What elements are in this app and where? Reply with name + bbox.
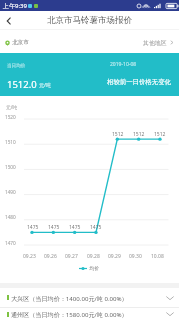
staticText: 1510 (5, 139, 16, 145)
staticText: 相较前一日价格无变化 (107, 78, 171, 86)
staticText: 元/吨 (39, 82, 51, 89)
staticText: 上午9:39 (3, 2, 27, 10)
staticText: 09.23 (23, 253, 36, 260)
staticText: 1470 (5, 240, 16, 246)
staticText: 1512.0 (7, 78, 37, 91)
staticText: 1512 (133, 131, 145, 138)
button[interactable]: 其他地区 (138, 35, 179, 50)
staticText: 1480 (5, 214, 16, 220)
staticText: 1520 (5, 114, 16, 120)
staticText: 1490 (5, 189, 16, 195)
staticText: 元/吨 (6, 104, 18, 110)
staticText: 09.26 (44, 253, 57, 260)
staticText: 1512 (154, 131, 166, 138)
staticText: 通州区（当日均价：1580.00元/吨 0.00%） (11, 310, 128, 318)
button[interactable]: 北京市 (0, 35, 34, 50)
staticText: 09.28 (87, 253, 100, 260)
staticText: 当日均价 (7, 63, 26, 69)
staticText: 2019-10-08 (110, 61, 137, 68)
staticText: 1500 (5, 164, 16, 170)
staticText: 1475 (48, 224, 60, 231)
staticText: 1475 (69, 224, 81, 231)
button[interactable]: 通州区（当日均价：1580.00元/吨 0.00%） (0, 308, 179, 320)
staticText: 大兴区（当日均价：1400.00元/吨 0.00%） (11, 294, 128, 302)
button[interactable]: 大兴区（当日均价：1400.00元/吨 0.00%） (0, 288, 179, 307)
button[interactable]: 返回 (0, 12, 17, 29)
staticText: 09.30 (129, 253, 142, 260)
staticText: 1475 (27, 224, 39, 231)
staticText: 其他地区 (143, 39, 167, 46)
staticText: 均价 (89, 265, 99, 271)
staticText: 09.29 (108, 253, 121, 260)
staticText: 1512 (112, 131, 124, 138)
staticText: 北京市马铃薯市场报价 (47, 15, 132, 26)
staticText: 1475 (90, 224, 102, 231)
staticText: 北京市 (12, 39, 29, 46)
staticText: 10.08 (151, 253, 164, 260)
staticText: 09.27 (65, 253, 78, 260)
